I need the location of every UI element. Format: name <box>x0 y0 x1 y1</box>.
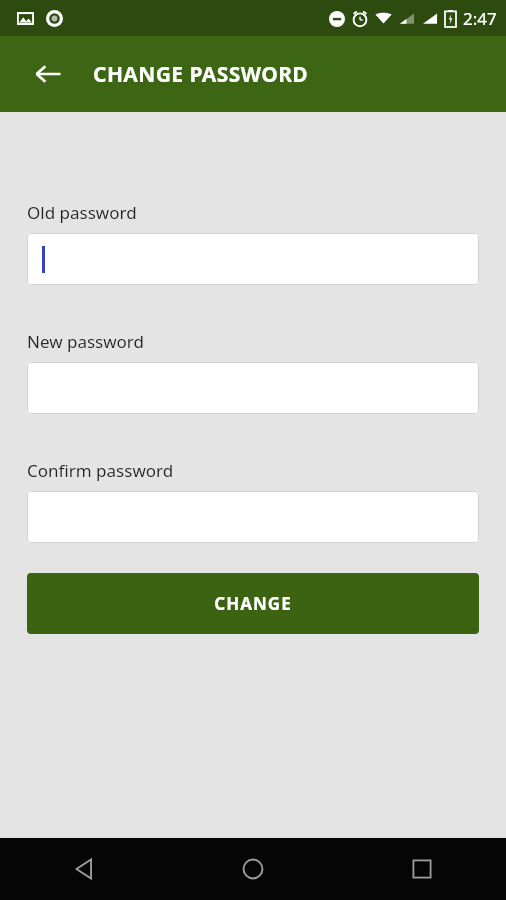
staticText: Old password <box>27 201 137 224</box>
staticText: New password <box>27 330 145 353</box>
staticText: CHANGE <box>214 592 292 615</box>
staticText: CHANGE PASSWORD <box>93 60 309 89</box>
button[interactable]: Home <box>168 838 337 900</box>
button[interactable]: CHANGE <box>27 573 479 634</box>
button[interactable]: Back <box>24 50 72 98</box>
staticText: 2:47 <box>463 7 497 30</box>
button[interactable]: Back <box>0 838 168 900</box>
button[interactable] <box>27 491 479 543</box>
button[interactable] <box>27 362 479 414</box>
button[interactable] <box>27 233 479 285</box>
staticText: Confirm password <box>27 459 174 482</box>
button[interactable]: Recent apps <box>337 838 506 900</box>
